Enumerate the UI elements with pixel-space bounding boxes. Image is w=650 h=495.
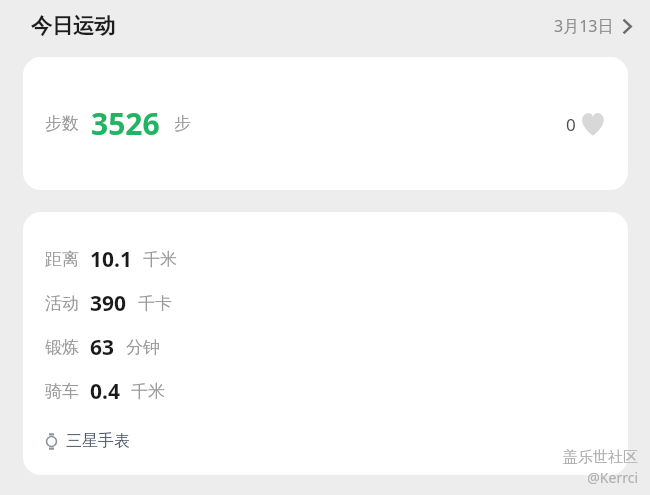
button[interactable]: 活动: [23, 281, 628, 325]
button[interactable]: 骑车: [23, 369, 628, 413]
staticText: 0.4: [90, 377, 120, 406]
staticText: 今日运动: [31, 13, 115, 39]
staticText: 千卡: [138, 293, 172, 314]
staticText: 骑车: [45, 381, 79, 402]
button[interactable]: 步数: [23, 57, 628, 190]
staticText: 分钟: [126, 337, 160, 358]
button[interactable]: 3月13日: [544, 11, 650, 41]
staticText: 3月13日: [554, 15, 614, 37]
staticText: 距离: [45, 249, 79, 270]
button[interactable]: 距离: [23, 237, 628, 281]
staticText: 活动: [45, 293, 79, 314]
staticText: @Kerrci: [587, 468, 638, 487]
staticText: 千米: [131, 381, 165, 402]
staticText: 3526: [91, 103, 160, 144]
staticText: 锻炼: [45, 337, 79, 358]
staticText: 63: [90, 333, 115, 362]
staticText: 三星手表: [66, 431, 130, 451]
staticText: 千米: [143, 249, 177, 270]
staticText: 步数: [45, 113, 79, 134]
staticText: 0: [566, 113, 576, 136]
other: Likes: [579, 111, 607, 137]
staticText: 390: [90, 289, 127, 318]
button[interactable]: 三星手表: [39, 427, 140, 455]
staticText: 步: [174, 113, 191, 134]
staticText: 10.1: [90, 245, 132, 274]
staticText: 盖乐世社区: [563, 448, 638, 467]
button[interactable]: 锻炼: [23, 325, 628, 369]
